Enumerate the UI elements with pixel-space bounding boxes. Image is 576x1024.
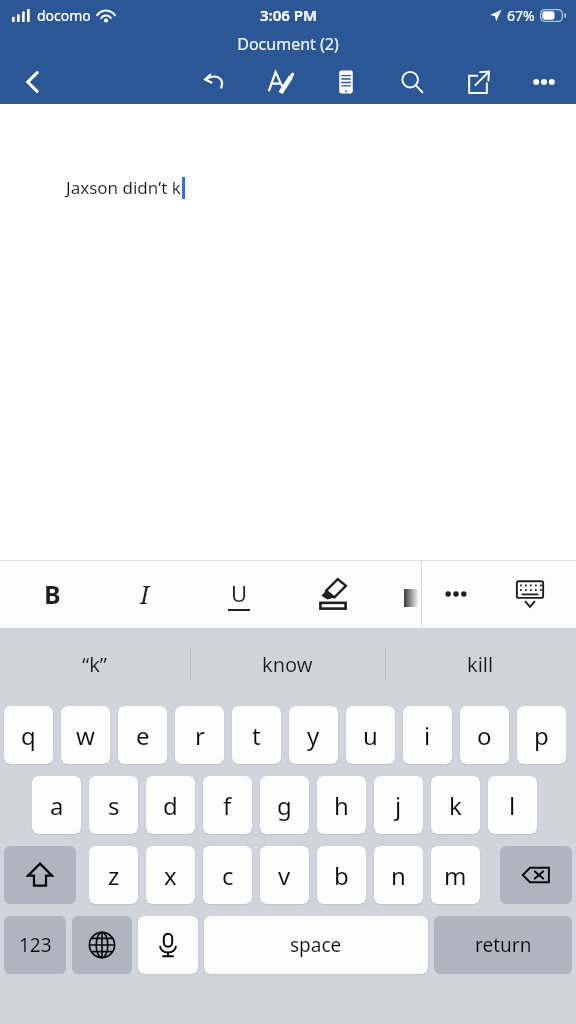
button[interactable]: t (232, 706, 281, 764)
button[interactable]: Undo (194, 62, 234, 102)
button[interactable]: More formatting (434, 572, 478, 616)
button[interactable]: U (218, 573, 260, 615)
button[interactable]: return (434, 916, 572, 974)
staticText: Jaxson didn’t k (66, 176, 181, 199)
button[interactable]: z (89, 846, 138, 904)
staticText: b (334, 859, 349, 892)
staticText: m (444, 859, 467, 892)
button[interactable]: Numbers (4, 916, 66, 974)
button[interactable]: Share (458, 62, 498, 102)
button[interactable]: c (203, 846, 252, 904)
button[interactable]: e (118, 706, 167, 764)
button[interactable]: p (517, 706, 566, 764)
button[interactable]: n (374, 846, 423, 904)
staticText: know (262, 651, 313, 678)
staticText: 67% (507, 6, 535, 25)
button[interactable]: f (203, 776, 252, 834)
staticText: kill (467, 651, 494, 678)
staticText: “k” (82, 651, 108, 678)
button[interactable]: j (374, 776, 423, 834)
button[interactable]: Format text (260, 62, 300, 102)
button[interactable]: Back (13, 62, 53, 102)
button[interactable]: w (61, 706, 110, 764)
button[interactable]: m (431, 846, 480, 904)
button[interactable]: q (4, 706, 53, 764)
staticText: y (307, 719, 320, 752)
button[interactable]: kill (385, 628, 576, 700)
staticText: l (509, 789, 516, 822)
button[interactable]: Mobile view (326, 62, 366, 102)
staticText: I (140, 577, 150, 611)
staticText: Document (2) (237, 33, 339, 55)
staticText: c (222, 859, 234, 892)
staticText: a (50, 789, 64, 822)
button[interactable]: u (346, 706, 395, 764)
button[interactable]: Backspace (500, 846, 572, 904)
button[interactable]: Hide keyboard (507, 571, 553, 617)
button[interactable]: b (317, 846, 366, 904)
button[interactable]: s (89, 776, 138, 834)
staticText: return (475, 932, 532, 958)
staticText: p (534, 719, 549, 752)
staticText: r (195, 719, 205, 752)
staticText: q (21, 719, 36, 752)
staticText: t (252, 719, 261, 752)
button[interactable]: i (403, 706, 452, 764)
staticText: h (334, 789, 349, 822)
button[interactable]: r (175, 706, 224, 764)
staticText: space (290, 932, 342, 958)
button[interactable]: h (317, 776, 366, 834)
staticText: docomo (37, 6, 91, 25)
staticText: 123 (19, 932, 52, 958)
staticText: e (136, 719, 150, 752)
staticText: v (278, 859, 291, 892)
button[interactable]: More options (524, 62, 564, 102)
button[interactable]: Highlight (311, 572, 355, 616)
staticText: B (44, 577, 61, 611)
staticText: i (424, 719, 431, 752)
button[interactable]: a (32, 776, 81, 834)
staticText: k (449, 789, 462, 822)
staticText: j (395, 789, 402, 822)
button[interactable]: Search (392, 62, 432, 102)
button[interactable]: g (260, 776, 309, 834)
staticText: z (108, 859, 120, 892)
button[interactable]: v (260, 846, 309, 904)
button[interactable]: know (190, 628, 385, 700)
button[interactable]: Shift (4, 846, 76, 904)
button[interactable]: “k” (0, 628, 190, 700)
staticText: u (363, 719, 378, 752)
button[interactable]: k (431, 776, 480, 834)
staticText: n (391, 859, 406, 892)
staticText: g (277, 789, 292, 822)
button[interactable]: I (124, 573, 166, 615)
staticText: o (477, 719, 492, 752)
staticText: 3:06 PM (260, 5, 317, 25)
button[interactable]: Change keyboard (72, 916, 132, 974)
staticText: f (223, 789, 232, 822)
button[interactable]: x (146, 846, 195, 904)
button[interactable]: y (289, 706, 338, 764)
button[interactable]: l (488, 776, 537, 834)
button[interactable]: Dictate (138, 916, 198, 974)
staticText: w (76, 719, 95, 752)
staticText: x (164, 859, 177, 892)
button[interactable]: space (204, 916, 428, 974)
button[interactable]: o (460, 706, 509, 764)
staticText: d (163, 789, 178, 822)
button[interactable]: B (31, 573, 73, 615)
button[interactable]: d (146, 776, 195, 834)
staticText: s (108, 789, 120, 822)
staticText: U (231, 578, 248, 608)
